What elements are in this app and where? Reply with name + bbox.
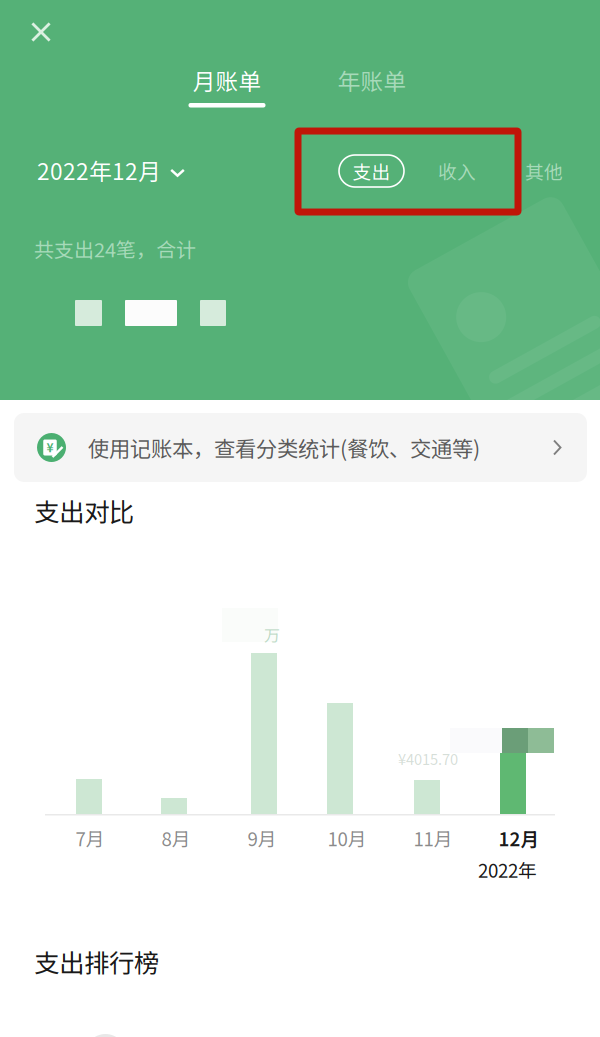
staticText: 共支出24笔，合计	[34, 234, 196, 263]
button[interactable]: 支出	[339, 155, 404, 187]
button[interactable]: 月账单	[177, 63, 277, 101]
staticText: ¥4015.70	[398, 748, 458, 769]
staticText: 11月	[413, 824, 452, 851]
staticText: 支出	[352, 157, 390, 184]
staticText: 2022年12月	[37, 154, 161, 186]
staticText: 万	[264, 623, 280, 646]
staticText: 支出对比	[34, 492, 134, 529]
button[interactable]: 年账单	[322, 63, 422, 101]
button[interactable]: ¥	[14, 413, 587, 482]
button[interactable]: 其他	[514, 155, 574, 187]
staticText: 12月	[498, 824, 539, 851]
staticText: 月账单	[192, 64, 261, 96]
button[interactable]: 2022年12月	[37, 152, 185, 188]
staticText: 支出排行榜	[34, 943, 159, 980]
staticText: 2022年	[478, 856, 537, 883]
staticText: 9月	[247, 824, 276, 851]
staticText: 使用记账本，查看分类统计(餐饮、交通等)	[88, 432, 480, 463]
staticText: 7月	[75, 824, 104, 851]
staticText: 收入	[438, 157, 476, 184]
staticText: ¥	[46, 438, 53, 456]
staticText: 8月	[161, 824, 190, 851]
staticText: 年账单	[337, 64, 406, 96]
staticText: 其他	[525, 157, 563, 184]
button[interactable]: 收入	[427, 155, 487, 187]
button[interactable]: Close	[18, 9, 64, 55]
staticText: 10月	[327, 824, 366, 851]
